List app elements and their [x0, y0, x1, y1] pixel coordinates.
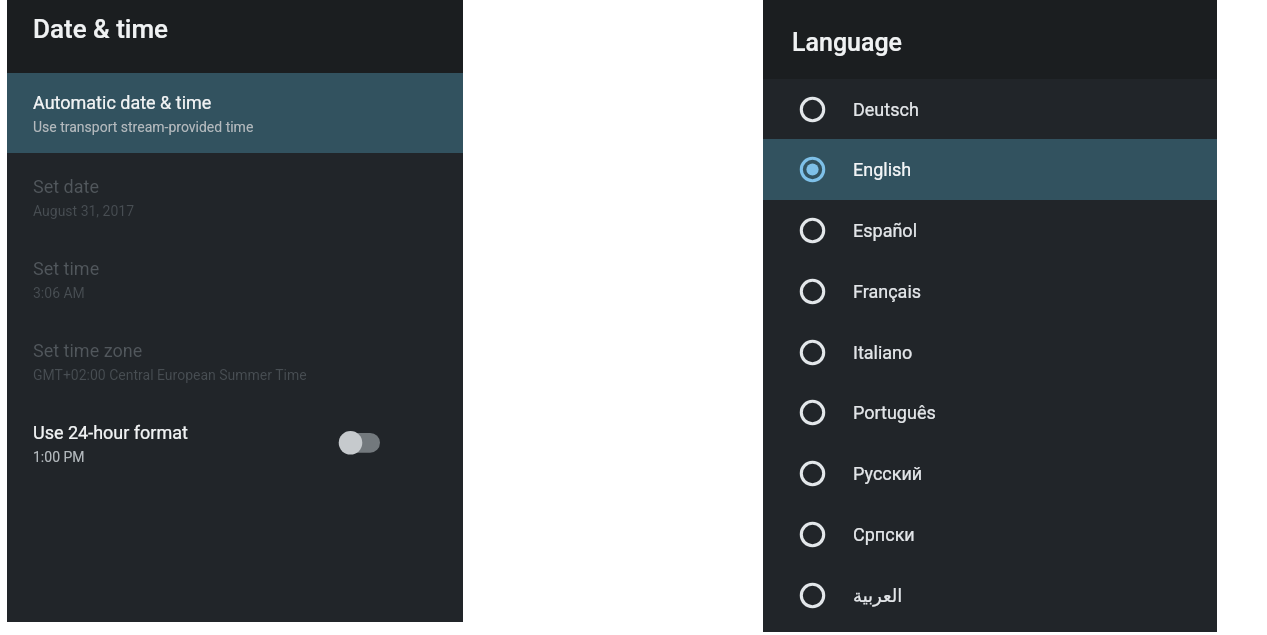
button[interactable]: Español [763, 200, 1217, 261]
staticText: Српски [853, 524, 915, 545]
staticText: August 31, 2017 [33, 203, 135, 219]
staticText: Español [853, 220, 918, 241]
button[interactable]: Português [763, 382, 1217, 443]
staticText: Set time zone [33, 340, 143, 361]
staticText: Set date [33, 176, 99, 197]
staticText: Français [853, 281, 922, 302]
button[interactable]: Français [763, 261, 1217, 322]
button[interactable]: Automatic date & time [7, 73, 463, 153]
button[interactable]: Set time [7, 239, 463, 321]
button[interactable]: Use 24-hour format [7, 403, 463, 485]
staticText: العربية [853, 585, 903, 606]
staticText: English [853, 159, 912, 180]
button[interactable]: Русский [763, 443, 1217, 504]
staticText: 1:00 PM [33, 449, 85, 465]
staticText: Language [792, 28, 903, 57]
button[interactable]: Italiano [763, 322, 1217, 383]
staticText: GMT+02:00 Central European Summer Time [33, 367, 307, 383]
staticText: Italiano [853, 342, 913, 363]
button[interactable]: Set date [7, 157, 463, 239]
staticText: Deutsch [853, 99, 919, 120]
staticText: Português [853, 402, 936, 423]
button[interactable]: العربية [763, 565, 1217, 626]
staticText: Use 24-hour format [33, 422, 188, 443]
staticText: Русский [853, 463, 923, 484]
staticText: 3:06 AM [33, 285, 85, 301]
staticText: Automatic date & time [33, 92, 212, 113]
staticText: Set time [33, 258, 100, 279]
button[interactable]: Deutsch [763, 79, 1217, 140]
button[interactable]: English [763, 139, 1217, 200]
staticText: Date & time [33, 14, 169, 44]
button[interactable]: Set time zone [7, 321, 463, 403]
button[interactable]: Use 24-hour format, off [331, 424, 387, 462]
button[interactable]: Српски [763, 504, 1217, 565]
staticText: Use transport stream-provided time [33, 119, 254, 135]
